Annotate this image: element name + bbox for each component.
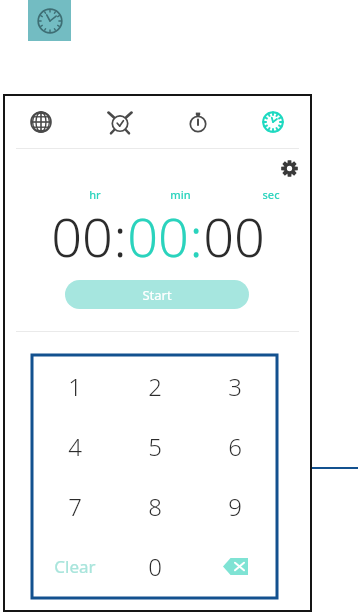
button[interactable]: 3 bbox=[195, 357, 275, 416]
staticText: Clear bbox=[54, 555, 96, 578]
staticText: 9 bbox=[228, 490, 242, 523]
button[interactable]: 5 bbox=[115, 416, 195, 476]
button[interactable]: 9 bbox=[195, 476, 275, 536]
staticText: 3 bbox=[228, 370, 242, 403]
button[interactable]: 0 bbox=[115, 536, 195, 596]
staticText: 6 bbox=[228, 430, 242, 463]
button[interactable]: Settings bbox=[276, 155, 302, 181]
button[interactable]: Stopwatch bbox=[185, 109, 211, 135]
staticText: : bbox=[113, 199, 127, 259]
staticText: 4 bbox=[68, 430, 82, 463]
button[interactable]: 1 bbox=[34, 357, 115, 416]
staticText: : bbox=[189, 199, 203, 259]
staticText: Start bbox=[142, 286, 172, 304]
button[interactable]: 2 bbox=[115, 357, 195, 416]
button[interactable]: 7 bbox=[34, 476, 115, 536]
button[interactable]: Alarm bbox=[107, 109, 133, 135]
staticText: 8 bbox=[148, 490, 162, 523]
staticText: 00 bbox=[203, 199, 265, 259]
staticText: hr bbox=[89, 187, 101, 202]
staticText: 7 bbox=[68, 490, 82, 523]
staticText: 5 bbox=[148, 430, 162, 463]
staticText: 2 bbox=[148, 370, 162, 403]
button[interactable]: Clear bbox=[34, 536, 115, 596]
staticText: 00 bbox=[127, 199, 189, 259]
button[interactable]: Timer bbox=[260, 109, 286, 135]
button[interactable]: Timer app icon bbox=[28, 0, 71, 41]
staticText: 0 bbox=[148, 550, 162, 583]
staticText: min bbox=[170, 187, 191, 202]
staticText: 00 bbox=[51, 199, 113, 259]
staticText: 1 bbox=[68, 370, 82, 403]
button[interactable]: 8 bbox=[115, 476, 195, 536]
button[interactable]: 4 bbox=[34, 416, 115, 476]
button[interactable]: 6 bbox=[195, 416, 275, 476]
staticText: sec bbox=[262, 187, 280, 202]
button[interactable]: Start bbox=[65, 280, 249, 309]
button[interactable]: Backspace bbox=[195, 536, 275, 596]
button[interactable]: World clock bbox=[28, 109, 54, 135]
